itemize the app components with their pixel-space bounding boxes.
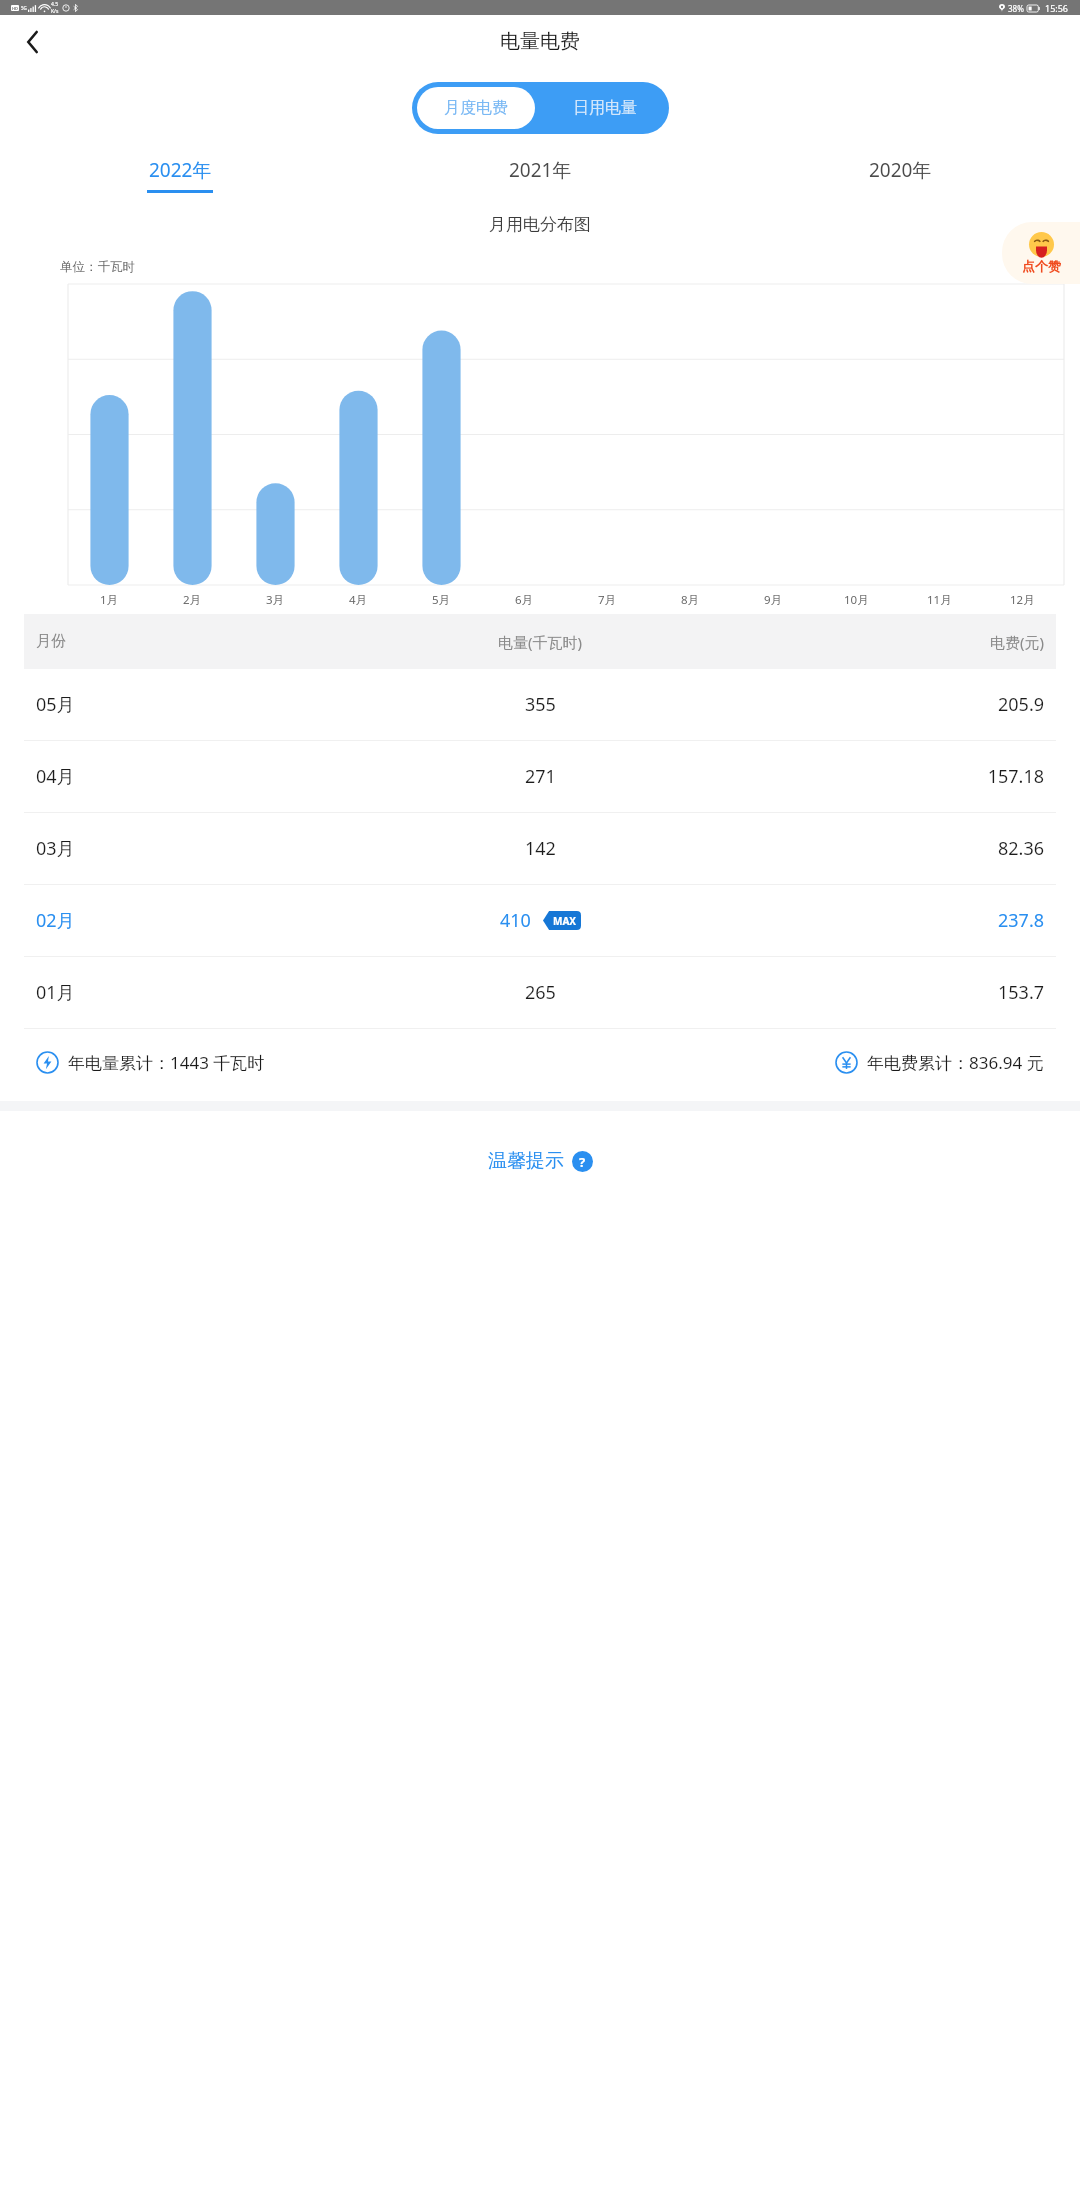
staticText: 205.9 xyxy=(734,692,1044,717)
button[interactable]: 03月 xyxy=(24,813,1056,884)
staticText: 7月 xyxy=(598,592,617,608)
button[interactable]: 01月 xyxy=(24,957,1056,1028)
staticText: MAX xyxy=(553,914,577,928)
staticText: 2021年 xyxy=(509,157,572,183)
staticText: 3月 xyxy=(266,592,285,608)
staticText: 9月 xyxy=(764,592,783,608)
staticText: 2月 xyxy=(183,592,202,608)
button[interactable]: 2022年 xyxy=(0,150,360,200)
staticText: 月份 xyxy=(36,632,346,651)
staticText: 温馨提示 xyxy=(488,1149,564,1173)
staticText: K/s xyxy=(51,8,59,15)
button[interactable]: 温馨提示 xyxy=(488,1149,593,1173)
button[interactable]: Back xyxy=(10,20,54,64)
staticText: 01月 xyxy=(36,980,346,1005)
staticText: 03月 xyxy=(36,836,346,861)
staticText: 11月 xyxy=(927,592,952,608)
staticText: 15:56 xyxy=(1045,2,1069,14)
staticText: 点个赞 xyxy=(1022,258,1061,274)
staticText: 4月 xyxy=(349,592,368,608)
staticText: 82.36 xyxy=(734,836,1044,861)
staticText: ? xyxy=(579,1153,586,1171)
staticText: 355 xyxy=(525,692,556,717)
staticText: 265 xyxy=(525,980,556,1005)
staticText: 04月 xyxy=(36,764,346,789)
staticText: 电量(千瓦时) xyxy=(346,632,734,652)
staticText: 237.8 xyxy=(734,908,1044,933)
button[interactable]: 日用电量 xyxy=(540,82,669,134)
staticText: 153.7 xyxy=(734,980,1044,1005)
button[interactable]: 02月 xyxy=(24,885,1056,956)
staticText: HD xyxy=(12,6,18,11)
button[interactable]: 2020年 xyxy=(720,150,1080,200)
button[interactable]: 05月 xyxy=(24,669,1056,740)
staticText: 电量电费 xyxy=(500,29,580,54)
staticText: 6月 xyxy=(515,592,534,608)
staticText: 410 xyxy=(500,908,531,933)
staticText: 2020年 xyxy=(869,157,932,183)
staticText: 4.5 xyxy=(51,1,59,8)
staticText: 5月 xyxy=(432,592,451,608)
staticText: 年电量累计：1443 千瓦时 xyxy=(68,1051,265,1074)
staticText: 02月 xyxy=(36,908,346,933)
staticText: 05月 xyxy=(36,692,346,717)
staticText: 12月 xyxy=(1010,592,1035,608)
staticText: 1月 xyxy=(100,592,119,608)
staticText: 8月 xyxy=(681,592,700,608)
button[interactable]: 点个赞 xyxy=(1002,222,1080,284)
staticText: 38% xyxy=(1008,3,1024,14)
staticText: 日用电量 xyxy=(573,98,637,118)
staticText: 271 xyxy=(525,764,556,789)
staticText: 年电费累计：836.94 元 xyxy=(867,1051,1044,1074)
staticText: 5G xyxy=(21,5,27,11)
button[interactable]: 月度电费 xyxy=(417,87,535,129)
staticText: 10月 xyxy=(844,592,869,608)
staticText: 单位：千瓦时 xyxy=(60,259,135,275)
staticText: 电费(元) xyxy=(734,632,1044,652)
staticText: 月用电分布图 xyxy=(0,214,1080,235)
staticText: 2022年 xyxy=(149,157,212,183)
staticText: 157.18 xyxy=(734,764,1044,789)
staticText: 142 xyxy=(525,836,556,861)
button[interactable]: 2021年 xyxy=(360,150,720,200)
button[interactable]: 04月 xyxy=(24,741,1056,812)
staticText: 月度电费 xyxy=(444,98,508,118)
